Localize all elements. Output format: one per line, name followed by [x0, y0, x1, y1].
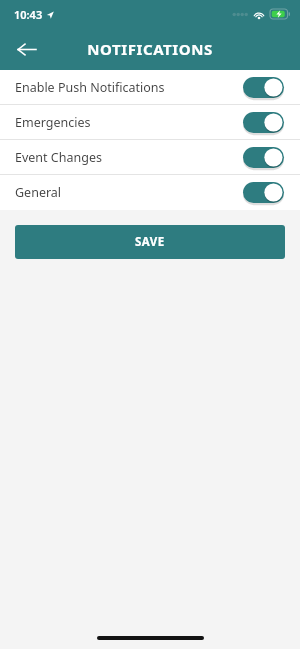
button[interactable]: Enable Push Notifications [0, 70, 300, 104]
button[interactable]: Back [8, 31, 44, 67]
staticText: Emergencies [15, 114, 243, 131]
button[interactable]: Toggle [243, 146, 284, 169]
button[interactable]: SAVE [15, 225, 285, 259]
button[interactable]: Event Changes [0, 140, 300, 174]
staticText: General [15, 184, 243, 201]
button[interactable]: General [0, 175, 300, 210]
staticText: Enable Push Notifications [15, 79, 243, 96]
button[interactable]: Emergencies [0, 105, 300, 139]
button[interactable]: Toggle [243, 76, 284, 99]
staticText: 10:43 [14, 7, 43, 22]
button[interactable]: Toggle [243, 181, 284, 204]
staticText: SAVE [135, 234, 165, 250]
button[interactable]: Toggle [243, 111, 284, 134]
staticText: NOTIFICATIONS [87, 39, 213, 59]
staticText: Event Changes [15, 149, 243, 166]
